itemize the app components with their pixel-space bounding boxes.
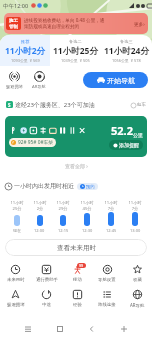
staticText: 经验: [73, 302, 82, 308]
staticText: 11小时 7分: [128, 200, 142, 212]
staticText: 通行费助手: [36, 277, 58, 283]
button[interactable]: 99: [62, 263, 92, 284]
staticText: 途经23个服务区、23个可加油: [15, 101, 95, 109]
other: Add: [120, 325, 128, 333]
staticText: 路线连接: [98, 302, 116, 308]
staticText: 预约: [86, 184, 95, 189]
staticText: 12:00: [34, 228, 45, 233]
button[interactable]: 未来用时: [0, 263, 31, 284]
button[interactable]: 推荐: [0, 35, 50, 66]
staticText: 未来用时: [7, 277, 25, 283]
staticText: 中途: [42, 302, 51, 308]
button[interactable]: 中途: [31, 288, 62, 309]
staticText: 1039公里 ¥ 505: [61, 58, 90, 63]
button[interactable]: 躲避拥堵: [6, 71, 23, 89]
staticText: 现在: [13, 228, 21, 233]
staticText: 11小时 2分: [33, 200, 47, 212]
button[interactable]: 预约: [77, 183, 98, 190]
button[interactable]: 添加提醒: [109, 140, 143, 150]
button[interactable]: 备选三: [101, 35, 152, 66]
staticText: 12:30: [82, 228, 93, 233]
button[interactable]: 查看未来用时: [5, 239, 147, 256]
staticText: 11小时 7分: [104, 200, 118, 212]
staticText: 电车: [137, 102, 146, 108]
staticText: 一小时内出发用时相近: [14, 182, 74, 190]
staticText: 92# 95# 0#车柴: [18, 139, 54, 146]
staticText: 推荐: [21, 39, 30, 44]
staticText: 更多›: [134, 21, 145, 27]
staticText: 11小时 45分: [80, 200, 94, 212]
staticText: 12:15: [58, 228, 69, 233]
staticText: 查看全部 ›: [65, 163, 88, 170]
staticText: 中午12:00: [3, 2, 29, 10]
staticText: 添加提醒: [119, 142, 139, 148]
staticText: 52.2: [111, 123, 133, 138]
staticText: AR导航: [130, 302, 145, 308]
staticText: 施工 管制: [9, 18, 18, 29]
button[interactable]: 收藏: [122, 263, 152, 284]
staticText: 策防规或高速自理全程封闭: [24, 24, 80, 30]
staticText: AR导航: [32, 84, 46, 90]
button[interactable]: 查看全部 ›: [5, 158, 147, 175]
other: Back: [88, 325, 96, 333]
button[interactable]: 施工 管制: [4, 13, 148, 34]
button[interactable]: 备选二: [50, 35, 101, 66]
button[interactable]: AR导航: [32, 71, 46, 90]
staticText: 11小时 25分: [10, 200, 24, 212]
button[interactable]: 通行费助手: [31, 263, 62, 284]
button[interactable]: 躲避拥堵: [0, 288, 31, 309]
staticText: 12:45: [106, 228, 117, 233]
button[interactable]: AR导航: [122, 288, 152, 309]
other: Home: [56, 325, 64, 333]
staticText: 13:00: [130, 228, 141, 233]
staticText: 公里: [133, 132, 143, 138]
staticText: 移动: [73, 277, 82, 283]
staticText: 11小时2分: [5, 45, 46, 57]
staticText: 11小时25分: [53, 45, 98, 57]
staticText: 躲避拥堵: [7, 302, 25, 308]
staticText: 99: [79, 263, 84, 268]
staticText: 11小时 29分: [56, 200, 70, 212]
button[interactable]: 开始导航: [83, 72, 148, 88]
staticText: 1093公里 ¥ 569: [11, 58, 40, 63]
staticText: 导航设置: [98, 277, 116, 283]
staticText: 进线投资格收费站，单向 0.48 公里，通: [24, 17, 105, 23]
staticText: 1056公里 ¥ 578: [112, 58, 141, 63]
staticText: 查看未来用时: [57, 244, 96, 252]
staticText: 开始导航: [107, 76, 135, 85]
button[interactable]: 路线连接: [92, 288, 122, 309]
staticText: 躲避拥堵: [6, 84, 23, 89]
staticText: 收藏: [133, 277, 142, 283]
button[interactable]: 导航设置: [92, 263, 122, 284]
staticText: 11小时24分: [104, 45, 149, 57]
staticText: 备选三: [120, 39, 133, 44]
button[interactable]: 经验: [62, 288, 92, 309]
other: Recents: [24, 325, 32, 333]
staticText: S: [8, 102, 11, 108]
staticText: 备选二: [69, 39, 82, 44]
button[interactable]: 92# 95# 0#车柴: [5, 116, 147, 157]
